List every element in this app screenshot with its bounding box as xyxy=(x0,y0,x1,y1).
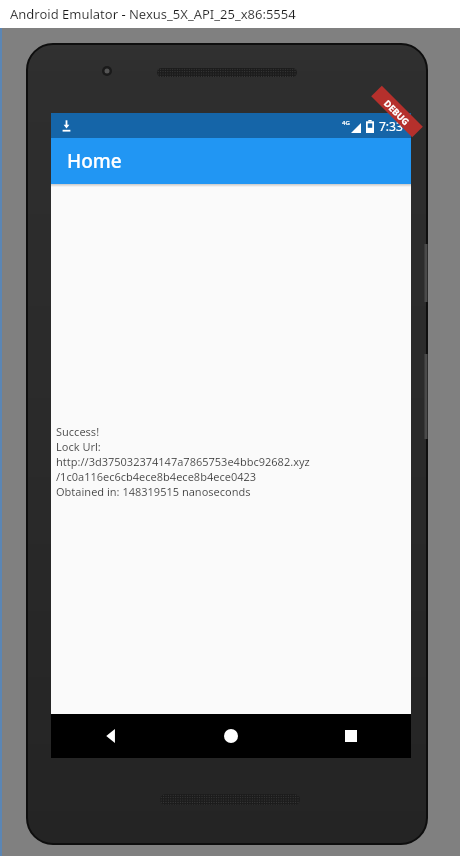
staticText: Success! xyxy=(56,424,100,439)
staticText: 7:33 xyxy=(379,118,403,134)
staticText: Obtained in: 148319515 nanoseconds xyxy=(56,484,251,499)
staticText: http://3d375032374147a7865753e4bbc92682.… xyxy=(56,454,310,469)
button[interactable]: Recent apps xyxy=(291,714,411,758)
staticText: Android Emulator - Nexus_5X_API_25_x86:5… xyxy=(10,5,296,23)
staticText: 4G xyxy=(342,119,350,127)
other: Download xyxy=(60,119,73,132)
button[interactable]: Back xyxy=(51,714,171,758)
staticText: Home xyxy=(67,148,122,174)
staticText: Lock Url: xyxy=(56,439,101,454)
button[interactable]: Home xyxy=(171,714,291,758)
staticText: /1c0a116ec6cb4ece8b4ece8b4ece0423 xyxy=(56,469,257,484)
staticText: DEBUG xyxy=(382,97,412,127)
